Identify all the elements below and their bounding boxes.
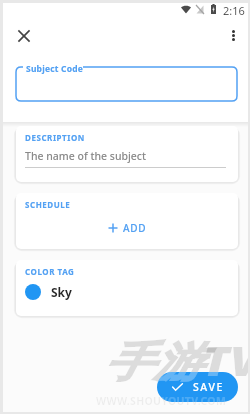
button[interactable]: More options (223, 25, 244, 46)
staticText: WWW.SHOUYOUTV.COM (96, 394, 227, 408)
button[interactable]: ADD (108, 221, 147, 235)
staticText: Subject Code (26, 63, 84, 75)
staticText: 2:16 (223, 3, 245, 18)
staticText: WWW.SHOUYOUTV.COM (157, 394, 227, 402)
button[interactable]: DESCRIPTION (16, 126, 238, 182)
button[interactable]: SCHEDULE (16, 193, 238, 249)
staticText: COLOR TAG (25, 266, 75, 277)
button[interactable]: Close (13, 25, 34, 46)
staticText: DESCRIPTION (25, 132, 85, 143)
staticText: ADD (123, 221, 147, 235)
staticText: Sky (51, 284, 72, 300)
staticText: SCHEDULE (25, 199, 71, 210)
staticText: 手游TV (157, 372, 238, 387)
staticText: 手游TV (104, 331, 250, 387)
button[interactable]: COLOR TAG (16, 260, 238, 316)
staticText: The name of the subject (25, 149, 147, 163)
button[interactable]: Subject Code (16, 62, 238, 102)
button[interactable]: 手游TV (157, 372, 238, 402)
staticText: SAVE (193, 380, 224, 394)
